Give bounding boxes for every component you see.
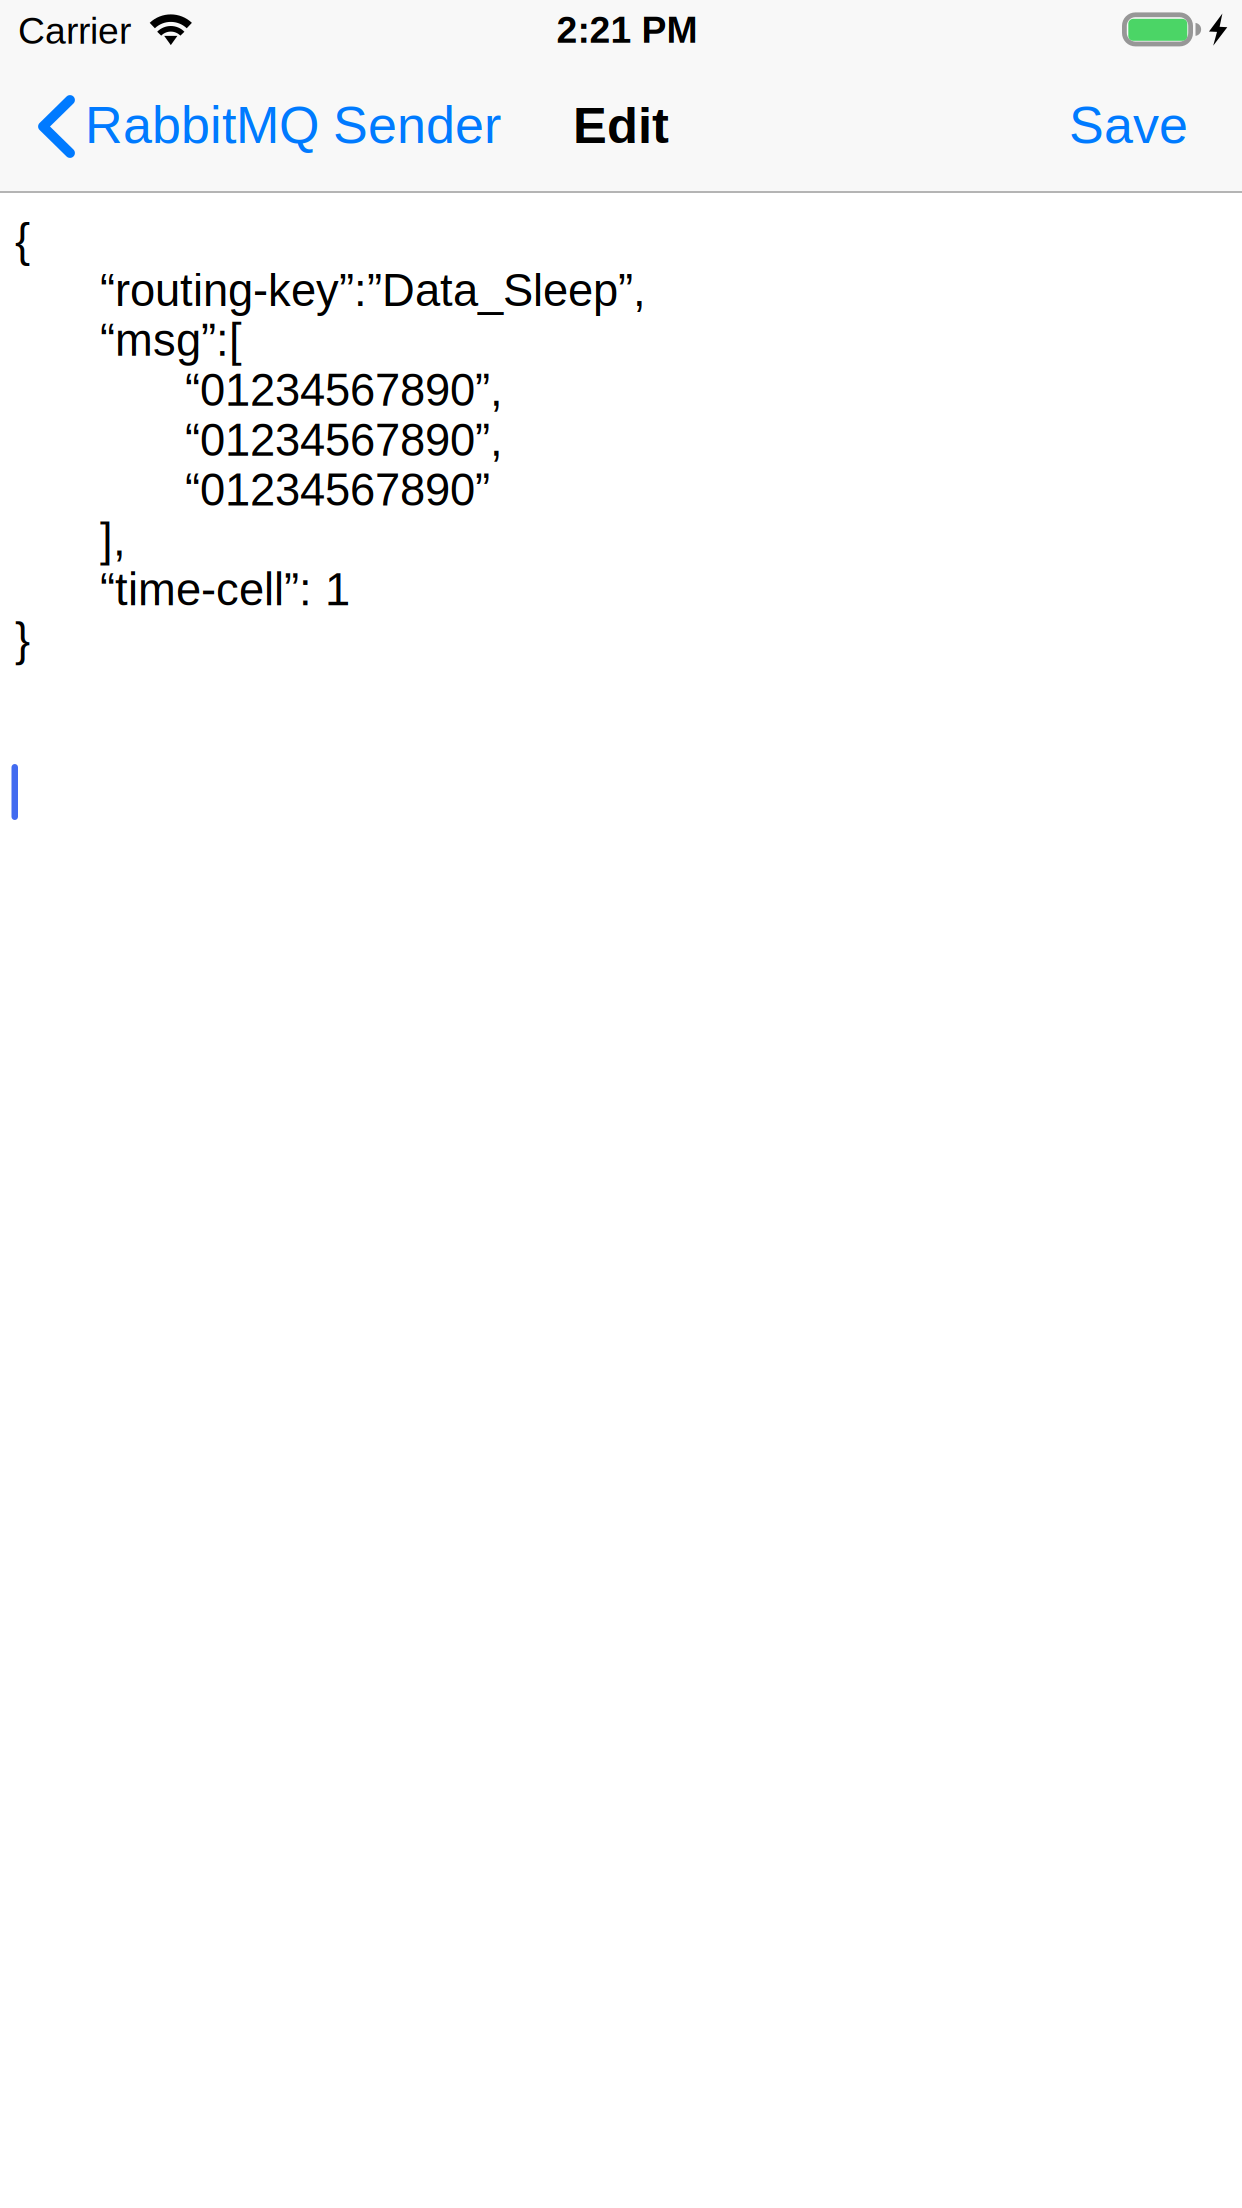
staticText: ], bbox=[100, 514, 126, 565]
button[interactable]: Back to RabbitMQ Sender bbox=[0, 60, 520, 191]
staticText: “01234567890”, bbox=[185, 365, 503, 415]
staticText: Carrier bbox=[18, 10, 131, 52]
staticText: RabbitMQ Sender bbox=[85, 96, 501, 154]
button[interactable]: Save bbox=[1012, 60, 1242, 191]
staticText: { bbox=[15, 215, 30, 266]
staticText: } bbox=[15, 614, 30, 665]
staticText: Save bbox=[1069, 96, 1188, 154]
staticText: “msg”:[ bbox=[100, 315, 242, 365]
staticText: Edit bbox=[573, 97, 669, 154]
staticText: “01234567890” bbox=[185, 464, 490, 515]
staticText: “routing-key”:”Data_Sleep”, bbox=[100, 265, 646, 315]
staticText: 2:21 PM bbox=[556, 9, 697, 51]
staticText: “01234567890”, bbox=[185, 415, 503, 465]
staticText: “time-cell”: 1 bbox=[100, 564, 350, 615]
